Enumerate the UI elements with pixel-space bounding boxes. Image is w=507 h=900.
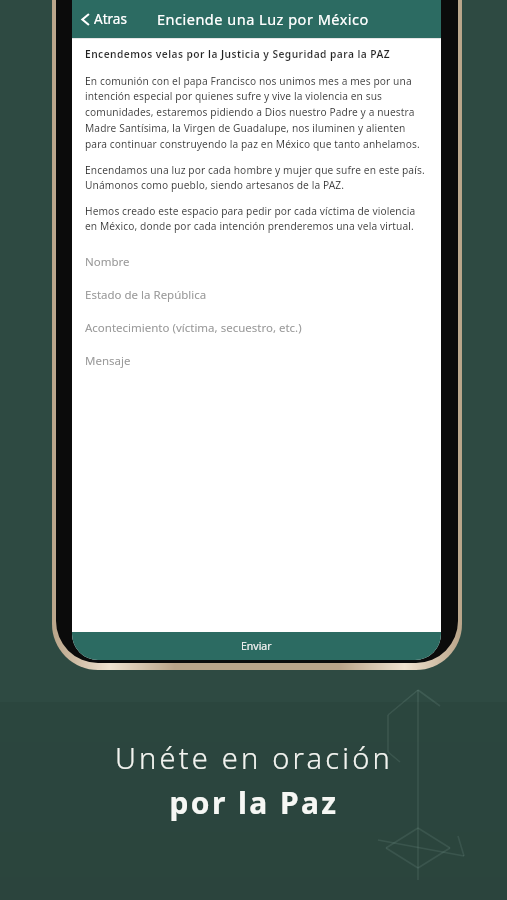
button[interactable]: Acontecimiento (víctima, secuestro, etc.… bbox=[85, 311, 430, 344]
button[interactable]: Atras bbox=[72, 6, 135, 32]
button[interactable]: Nombre bbox=[85, 245, 430, 278]
button[interactable]: Mensaje bbox=[85, 344, 430, 377]
staticText: Enviar bbox=[241, 639, 272, 653]
staticText: Nombre bbox=[85, 254, 130, 270]
staticText: por la Paz bbox=[169, 782, 339, 823]
staticText: Encendamos una luz por cada hombre y muj… bbox=[85, 163, 430, 192]
staticText: Hemos creado este espacio para pedir por… bbox=[85, 204, 430, 233]
staticText: Estado de la República bbox=[85, 287, 207, 303]
staticText: Enciende una Luz por México bbox=[157, 9, 369, 29]
staticText: Atras bbox=[94, 10, 127, 28]
staticText: Acontecimiento (víctima, secuestro, etc.… bbox=[85, 320, 302, 336]
staticText: Mensaje bbox=[85, 353, 131, 369]
button[interactable]: Estado de la República bbox=[85, 278, 430, 311]
staticText: En comunión con el papa Francisco nos un… bbox=[85, 74, 430, 151]
staticText: Unéte en oración bbox=[115, 738, 393, 777]
button[interactable]: Enviar bbox=[72, 632, 441, 660]
staticText: Encendemos velas por la Justicia y Segur… bbox=[85, 47, 391, 61]
